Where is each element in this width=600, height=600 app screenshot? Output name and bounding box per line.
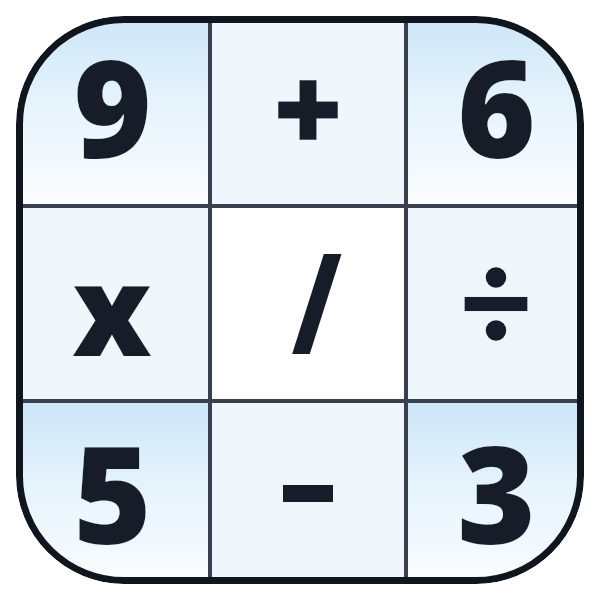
button[interactable]: Divide [408,208,584,399]
staticText: 6 [457,16,536,198]
staticText: x [72,221,152,393]
button[interactable]: Multiply [16,208,208,399]
staticText: 3 [457,401,536,582]
button[interactable]: Divide slash [212,208,404,399]
button[interactable]: Nine [16,16,208,204]
button[interactable]: Minus [212,403,404,584]
button[interactable]: Six [408,16,584,204]
button[interactable]: Three [408,403,584,584]
button[interactable]: Plus [212,16,404,204]
staticText: 5 [73,401,152,582]
button[interactable]: Five [16,403,208,584]
staticText: 9 [73,16,152,198]
